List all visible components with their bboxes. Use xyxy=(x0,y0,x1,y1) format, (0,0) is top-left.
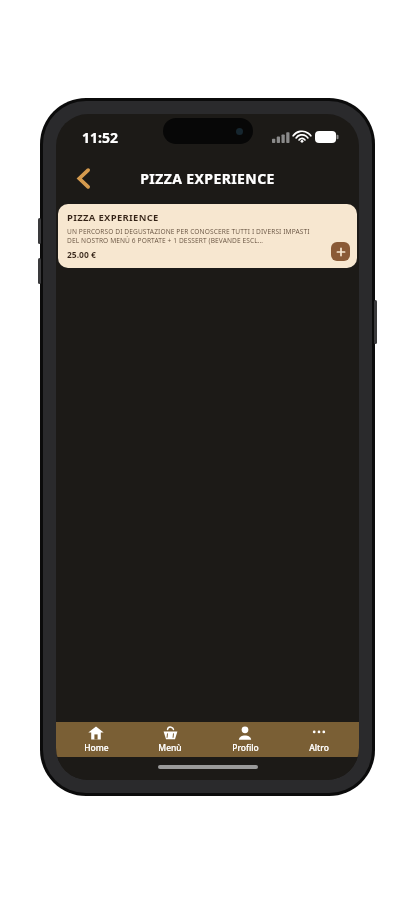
staticText: 25.00 € xyxy=(67,249,96,261)
staticText: Profilo xyxy=(232,742,259,754)
staticText: 11:52 xyxy=(82,128,118,147)
button[interactable]: Profilo xyxy=(210,723,280,757)
button[interactable]: PIZZA EXPERIENCE xyxy=(58,204,357,268)
button[interactable]: Back xyxy=(64,159,102,197)
staticText: UN PERCORSO DI DEGUSTAZIONE PER CONOSCER… xyxy=(67,227,315,245)
staticText: PIZZA EXPERIENCE xyxy=(67,211,159,224)
staticText: PIZZA EXPERIENCE xyxy=(140,169,275,188)
staticText: Menù xyxy=(158,742,182,754)
button[interactable]: Home xyxy=(61,723,131,757)
button[interactable]: Menù xyxy=(135,723,205,757)
button[interactable]: Add to order xyxy=(331,242,350,261)
staticText: Home xyxy=(84,742,109,754)
staticText: Altro xyxy=(309,742,329,754)
button[interactable]: Altro xyxy=(284,723,354,757)
